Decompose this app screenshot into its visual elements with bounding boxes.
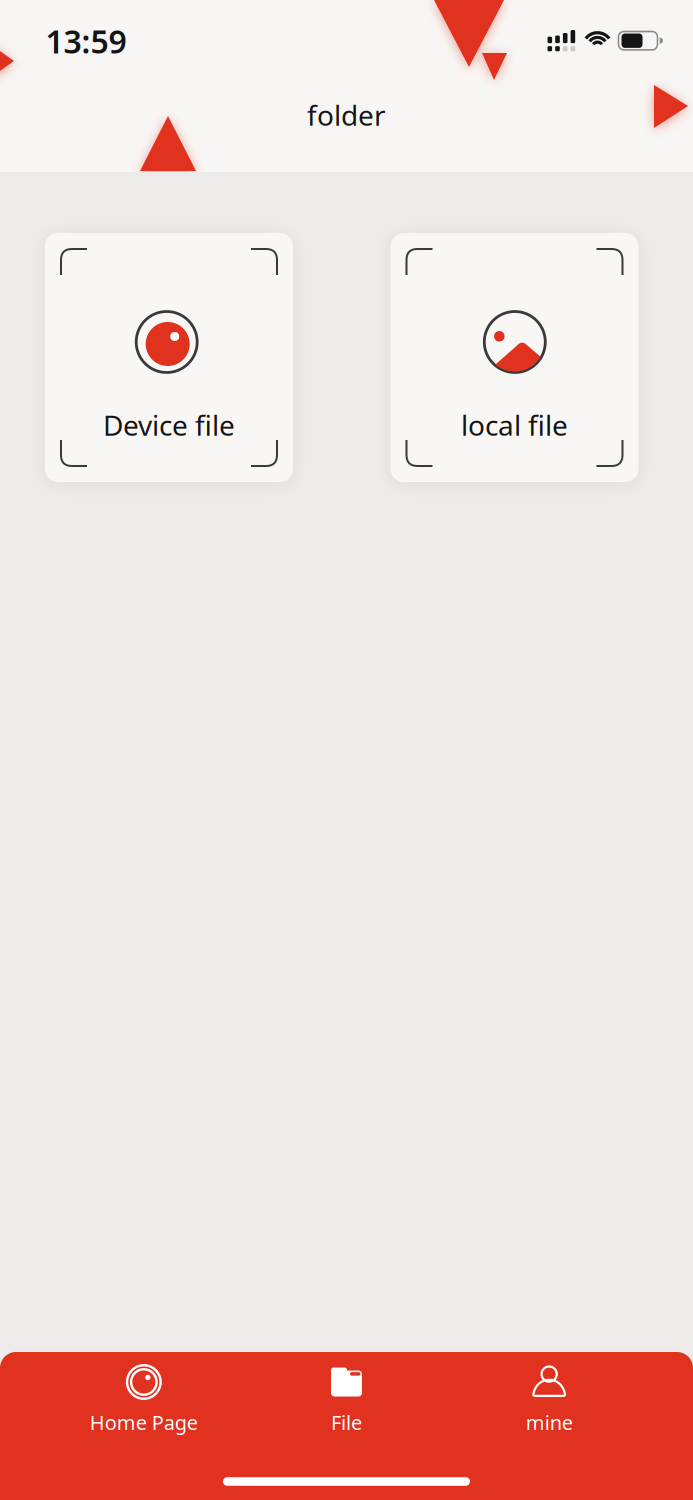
staticText: mine [526,1409,573,1436]
staticText: Device file [103,406,235,444]
staticText: 13:59 [45,20,126,62]
button[interactable]: Home Page [42,1363,245,1436]
staticText: folder [307,96,386,134]
button[interactable]: File [245,1363,448,1436]
staticText: File [331,1409,362,1436]
button[interactable]: mine [448,1363,650,1436]
button[interactable]: Home [223,1477,470,1486]
staticText: local file [461,406,568,444]
staticText: Home Page [90,1409,198,1436]
button[interactable]: local file [390,233,638,482]
button[interactable]: Device file [45,233,293,482]
